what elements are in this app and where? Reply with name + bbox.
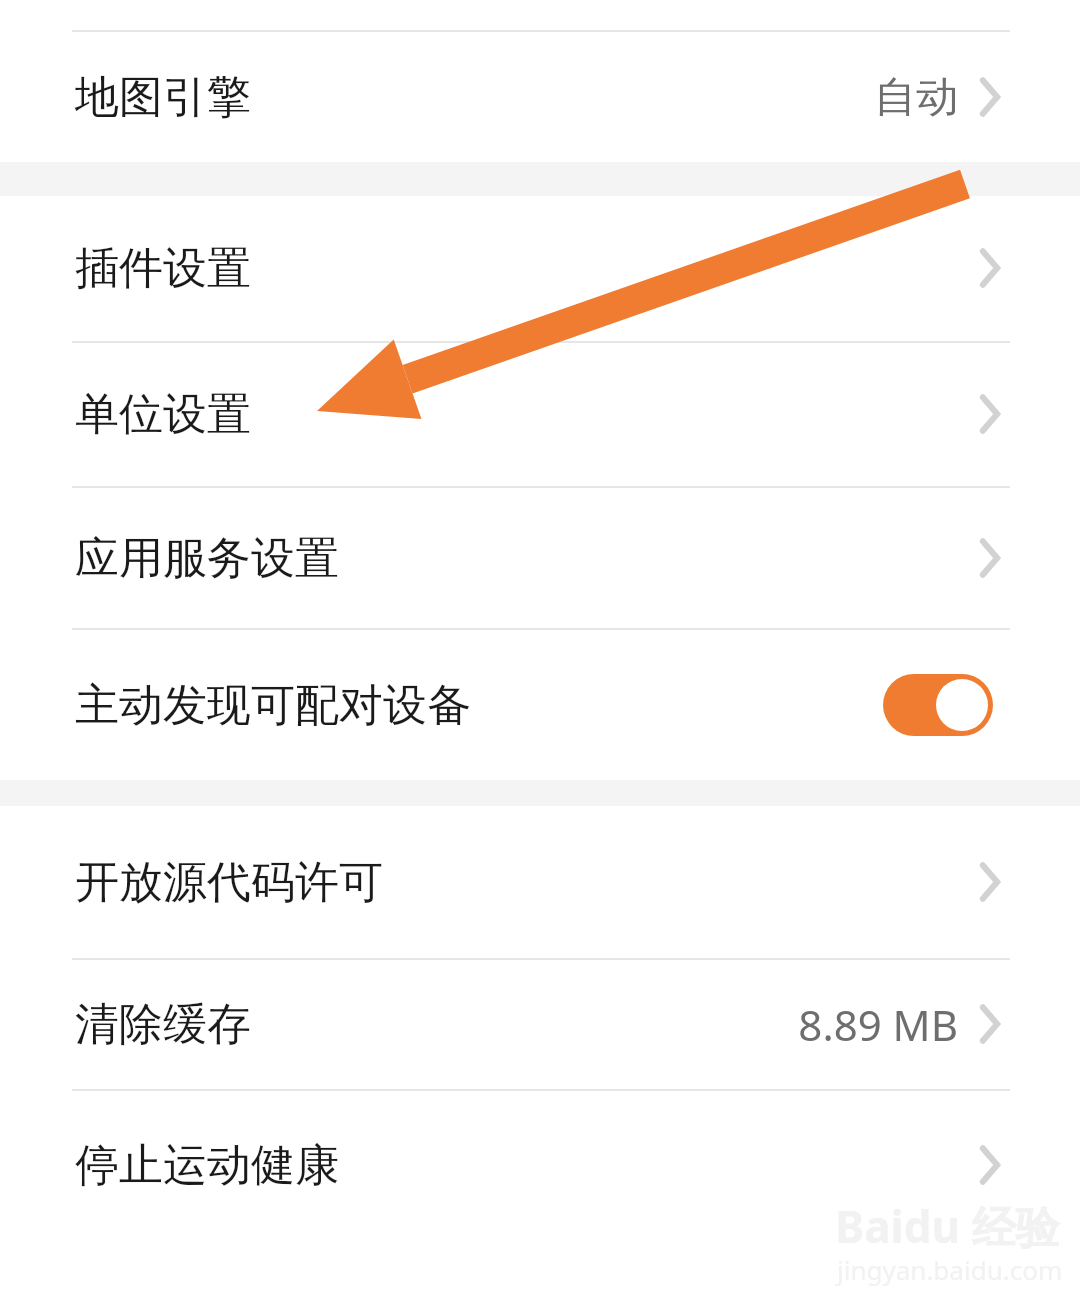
button[interactable]: 主动发现可配对设备 [0, 630, 1080, 780]
button[interactable]: 单位设置 [0, 343, 1080, 486]
button[interactable]: 地图引擎 [0, 32, 1080, 162]
staticText: 开放源代码许可 [75, 855, 383, 910]
staticText: 应用服务设置 [75, 531, 339, 586]
staticText: Baidu 经验 [835, 1196, 1060, 1256]
button[interactable]: 开放源代码许可 [0, 806, 1080, 958]
staticText: jingyan.baidu.com [837, 1252, 1063, 1287]
staticText: 插件设置 [75, 241, 251, 296]
button[interactable]: 停止运动健康 [0, 1091, 1080, 1239]
button[interactable]: 主动发现可配对设备开关 [883, 674, 993, 736]
staticText: 停止运动健康 [75, 1138, 339, 1193]
button[interactable]: 插件设置 [0, 196, 1080, 341]
staticText: 自动 [874, 71, 958, 124]
staticText: 清除缓存 [75, 997, 251, 1052]
button[interactable]: 清除缓存 [0, 960, 1080, 1089]
staticText: 单位设置 [75, 387, 251, 442]
staticText: 8.89 MB [798, 996, 958, 1053]
staticText: 地图引擎 [75, 70, 251, 125]
staticText: 主动发现可配对设备 [75, 678, 471, 733]
button[interactable]: 应用服务设置 [0, 488, 1080, 628]
